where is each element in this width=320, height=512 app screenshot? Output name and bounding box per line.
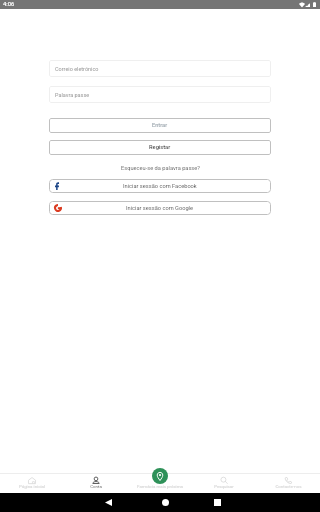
button[interactable]: Página inicial bbox=[0, 473, 64, 489]
button[interactable]: Pesquisar bbox=[192, 473, 256, 489]
staticText: Entrar bbox=[152, 122, 168, 129]
button[interactable]: Contacte-nos bbox=[256, 473, 320, 489]
button[interactable]: Recent apps bbox=[191, 493, 243, 512]
button[interactable]: Entrar bbox=[49, 118, 271, 133]
staticText: Esqueceu-se da palavra passe? bbox=[121, 165, 200, 172]
staticText: 4:06 bbox=[3, 1, 15, 8]
staticText: Registar bbox=[149, 144, 171, 151]
button[interactable]: Iniciar sessão com Google bbox=[49, 201, 271, 215]
staticText: Iniciar sessão com Google bbox=[126, 205, 194, 212]
staticText: Pesquisar bbox=[214, 484, 234, 489]
staticText: Conta bbox=[90, 484, 102, 489]
staticText: Iniciar sessão com Facebook bbox=[123, 183, 197, 190]
staticText: Página inicial bbox=[19, 484, 45, 489]
button[interactable]: Iniciar sessão com Facebook bbox=[49, 179, 271, 193]
button[interactable]: Esqueceu-se da palavra passe? bbox=[49, 164, 271, 173]
button[interactable]: Correio eletrónico bbox=[49, 60, 271, 77]
staticText: Farmácia mais próxima bbox=[137, 484, 183, 489]
button[interactable]: Conta bbox=[64, 473, 128, 489]
button[interactable]: Back bbox=[78, 493, 139, 512]
button[interactable]: Farmácia mais próxima bbox=[128, 473, 192, 489]
button[interactable]: Registar bbox=[49, 140, 271, 155]
button[interactable]: Home bbox=[139, 493, 191, 512]
button[interactable]: Farmácia mais próxima bbox=[152, 468, 168, 484]
staticText: Correio eletrónico bbox=[55, 66, 99, 72]
staticText: Contacte-nos bbox=[275, 484, 302, 489]
staticText: Palavra passe bbox=[55, 92, 90, 98]
button[interactable]: Palavra passe bbox=[49, 86, 271, 103]
